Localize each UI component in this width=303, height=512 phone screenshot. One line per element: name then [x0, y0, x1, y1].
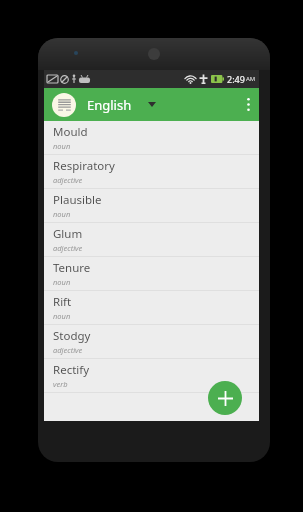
- button[interactable]: Respiratory: [44, 155, 259, 188]
- staticText: Mould: [53, 124, 88, 140]
- staticText: noun: [53, 311, 71, 321]
- button[interactable]: Tenure: [44, 257, 259, 290]
- button[interactable]: English: [44, 88, 156, 121]
- staticText: Plausible: [53, 192, 102, 208]
- staticText: Glum: [53, 226, 83, 242]
- button[interactable]: Mould: [44, 121, 259, 154]
- button[interactable]: Rectify: [44, 359, 259, 392]
- button[interactable]: Add new word: [208, 381, 242, 415]
- staticText: Stodgy: [53, 328, 91, 344]
- button[interactable]: More options: [237, 88, 259, 121]
- button[interactable]: Plausible: [44, 189, 259, 222]
- staticText: adjective: [53, 243, 83, 253]
- staticText: Respiratory: [53, 158, 115, 174]
- staticText: noun: [53, 277, 71, 287]
- staticText: 2:49: [227, 73, 245, 85]
- staticText: Rectify: [53, 362, 90, 378]
- staticText: noun: [53, 209, 71, 219]
- staticText: adjective: [53, 345, 83, 355]
- staticText: AM: [246, 75, 256, 83]
- staticText: Tenure: [53, 260, 91, 276]
- staticText: English: [87, 96, 132, 114]
- staticText: noun: [53, 141, 71, 151]
- staticText: adjective: [53, 175, 83, 185]
- button[interactable]: Stodgy: [44, 325, 259, 358]
- staticText: verb: [53, 379, 68, 389]
- staticText: Rift: [53, 294, 72, 310]
- button[interactable]: Rift: [44, 291, 259, 324]
- button[interactable]: Glum: [44, 223, 259, 256]
